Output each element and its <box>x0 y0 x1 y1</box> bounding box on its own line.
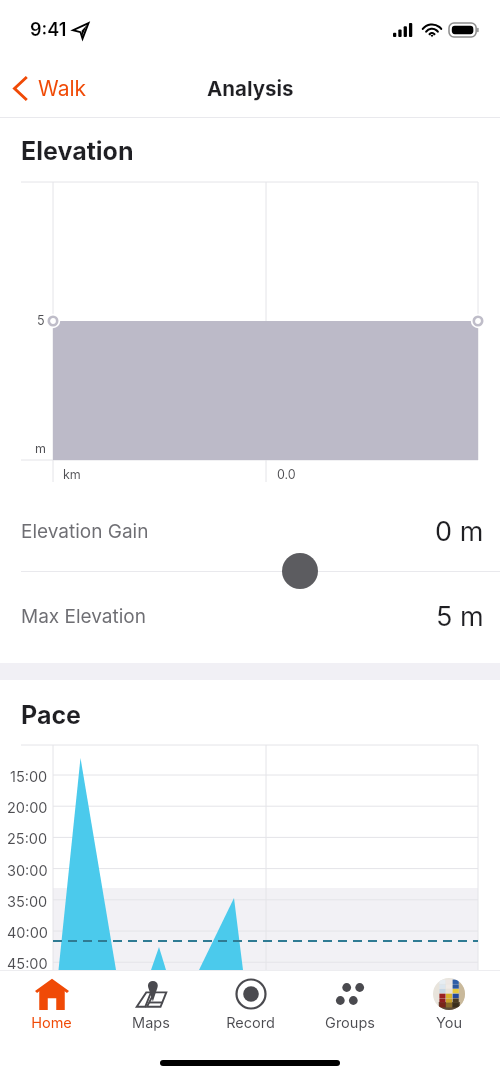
staticText: Elevation Gain <box>21 520 149 543</box>
staticText: Maps <box>132 1014 170 1032</box>
staticText: You <box>436 1014 462 1032</box>
staticText: Elevation <box>21 136 134 166</box>
button[interactable]: Home <box>4 971 99 1032</box>
staticText: Home <box>31 1014 72 1032</box>
staticText: Walk <box>38 76 87 101</box>
staticText: 30:00 <box>7 862 48 880</box>
staticText: 5 m <box>436 600 484 633</box>
button[interactable]: Walk <box>0 68 99 109</box>
button[interactable]: You profile <box>401 971 496 1032</box>
other: You profile <box>433 978 465 1010</box>
button[interactable]: Max Elevation <box>0 576 500 656</box>
staticText: Analysis <box>207 76 294 101</box>
staticText: Groups <box>325 1014 375 1032</box>
staticText: 45:00 <box>7 955 48 973</box>
staticText: 5 <box>37 313 45 328</box>
staticText: 15:00 <box>10 768 48 786</box>
button[interactable]: Maps <box>103 971 198 1032</box>
other: Record <box>234 978 268 1010</box>
staticText: m <box>35 441 46 456</box>
staticText: 9:41 <box>30 19 67 41</box>
staticText: Record <box>226 1014 275 1032</box>
button[interactable]: Groups <box>302 971 397 1032</box>
button[interactable]: Resize <box>282 553 318 589</box>
staticText: 35:00 <box>7 893 48 911</box>
other: Maps <box>134 978 168 1010</box>
button[interactable]: Record <box>203 971 298 1032</box>
staticText: Pace <box>21 700 81 730</box>
staticText: 0 m <box>435 515 484 548</box>
staticText: 20:00 <box>7 799 48 817</box>
staticText: 25:00 <box>7 830 48 848</box>
staticText: 0.0 <box>277 467 296 482</box>
staticText: Max Elevation <box>21 605 146 628</box>
other: Home <box>35 978 69 1010</box>
staticText: 40:00 <box>7 924 48 942</box>
other: Groups <box>333 978 367 1010</box>
button[interactable]: Elevation Gain <box>0 491 500 571</box>
staticText: km <box>63 467 81 482</box>
